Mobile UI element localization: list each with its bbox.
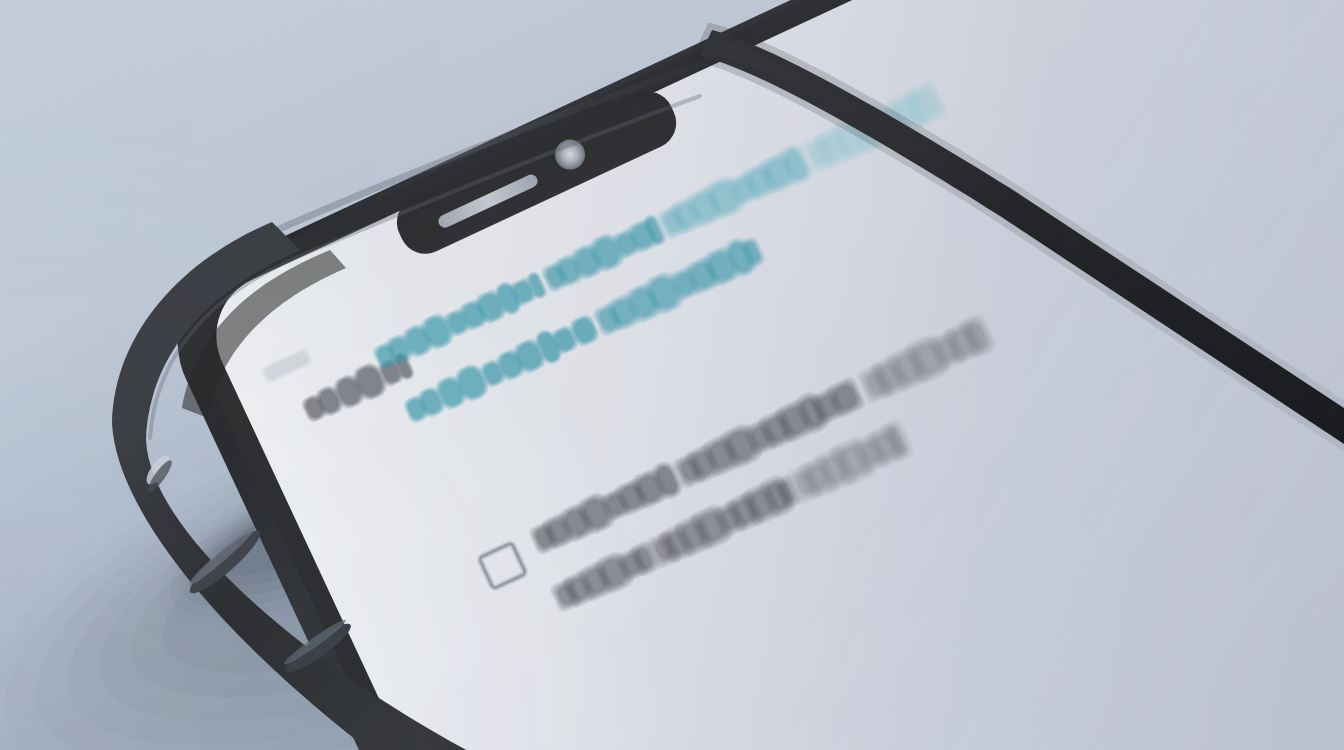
button[interactable]: Smartphone on a desk showing an app scre… [0, 0, 1344, 750]
